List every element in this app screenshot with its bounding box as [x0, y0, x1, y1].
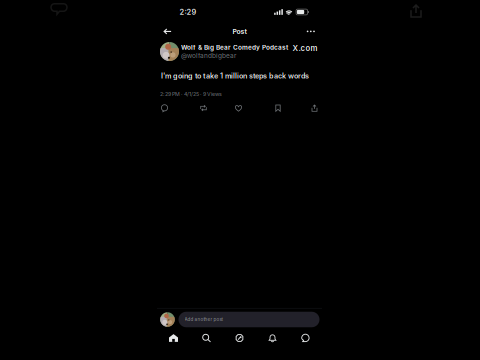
button[interactable]: X.com — [292, 44, 317, 53]
button[interactable]: Share — [304, 101, 324, 115]
staticText: 2:29 PM · 4/1/25 · 9 Views — [160, 91, 222, 97]
button[interactable]: More options — [301, 22, 321, 40]
staticText: Post — [232, 27, 246, 36]
button[interactable]: Profile photo — [160, 42, 179, 61]
button[interactable]: Search — [191, 328, 221, 347]
button[interactable]: Grok — [224, 328, 254, 347]
staticText: @wolfandbigbear — [181, 52, 236, 59]
staticText: Add another post — [184, 317, 222, 322]
staticText: 2:29 — [179, 7, 196, 16]
button[interactable]: Home — [158, 328, 188, 347]
staticText: I'm going to take 1 million steps back w… — [161, 71, 309, 80]
staticText: X.com — [292, 44, 317, 53]
button[interactable]: Like — [228, 101, 248, 115]
staticText: Wolf & Big Bear Comedy Podcast — [181, 43, 288, 51]
button[interactable]: Reply — [154, 101, 174, 115]
button[interactable]: Notifications — [257, 328, 287, 347]
button[interactable]: Messages — [290, 328, 320, 347]
button[interactable]: Add another post — [178, 312, 319, 327]
button[interactable]: Repost — [193, 101, 213, 115]
button[interactable]: Bookmark — [268, 101, 288, 115]
button[interactable]: Wolf & Big Bear Comedy Podcast — [181, 43, 288, 60]
button[interactable]: Back — [156, 22, 178, 40]
